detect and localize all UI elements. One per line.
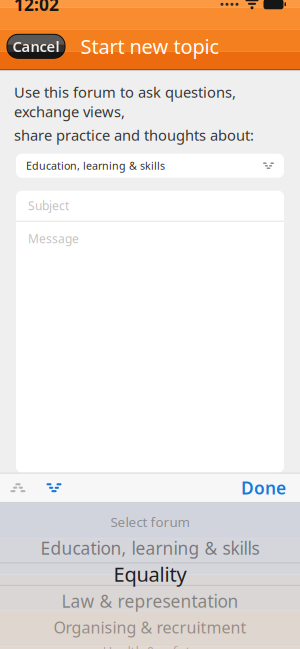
- staticText: Cancel: [12, 36, 59, 56]
- button[interactable]: Cancel: [7, 34, 65, 58]
- staticText: Organising & recruitment: [53, 617, 246, 638]
- staticText: Health & safety: [102, 642, 197, 649]
- button[interactable]: Education, learning & skills: [16, 154, 284, 178]
- button[interactable]: Subject: [28, 191, 272, 221]
- staticText: Start new topic: [80, 33, 219, 60]
- staticText: 12:02: [14, 0, 59, 16]
- staticText: Done: [241, 476, 286, 499]
- button[interactable]: Next field: [36, 473, 72, 503]
- staticText: share practice and thoughts about:: [14, 125, 254, 145]
- button[interactable]: Done: [227, 473, 300, 503]
- staticText: Equality: [113, 561, 186, 587]
- staticText: Use this forum to ask questions, exchang…: [14, 82, 236, 121]
- staticText: Law & representation: [61, 590, 238, 613]
- staticText: Select forum: [110, 513, 189, 531]
- staticText: Subject: [28, 198, 69, 214]
- staticText: Education, learning & skills: [26, 159, 165, 173]
- staticText: Message: [28, 231, 79, 247]
- staticText: Education, learning & skills: [40, 537, 259, 560]
- button[interactable]: Previous field: [0, 473, 36, 503]
